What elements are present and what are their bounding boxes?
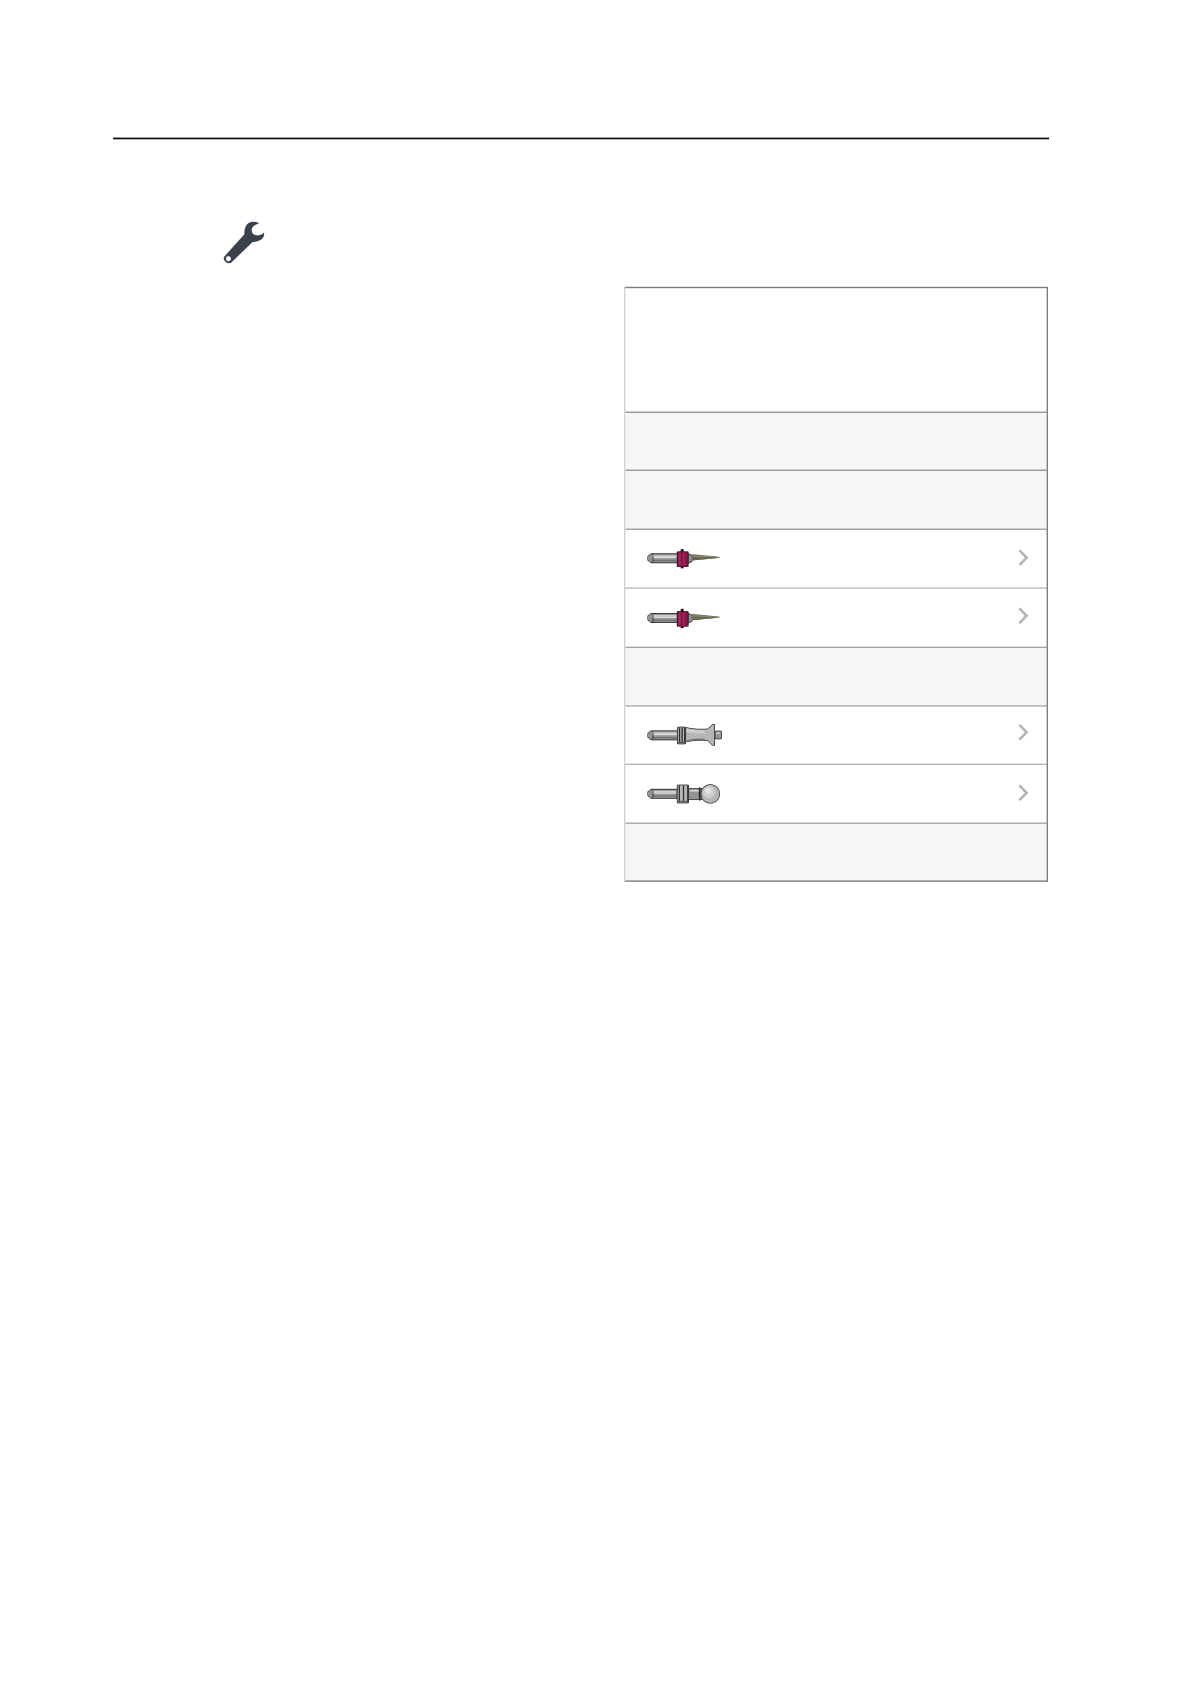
button[interactable]: Open item (625, 589, 1047, 646)
button[interactable]: Open item (625, 765, 1047, 822)
button[interactable]: Open item (625, 530, 1047, 587)
button[interactable]: Open item (625, 707, 1047, 763)
